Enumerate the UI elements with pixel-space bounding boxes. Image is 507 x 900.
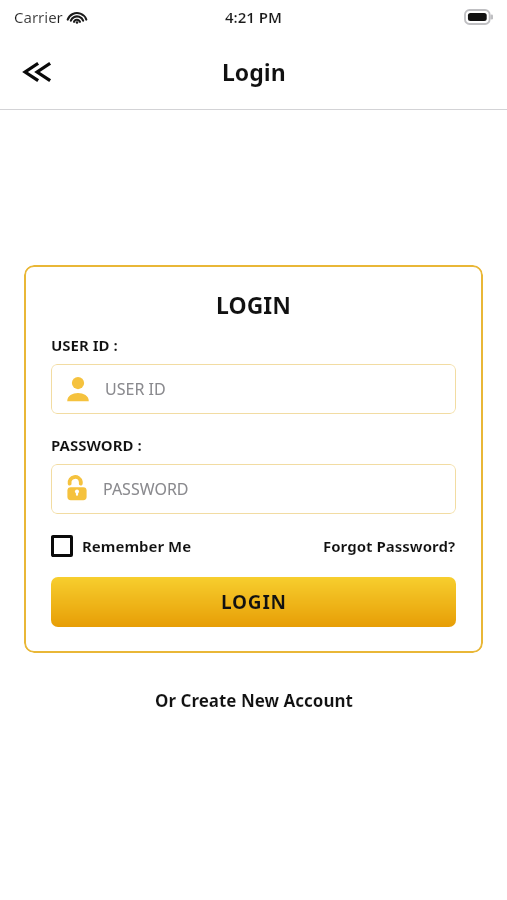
staticText: Carrier (14, 7, 63, 27)
staticText: Login (222, 56, 286, 87)
button[interactable]: Forgot Password? (323, 536, 456, 556)
staticText: USER ID : (51, 335, 118, 355)
staticText: LOGIN (51, 289, 456, 320)
staticText: PASSWORD (103, 478, 189, 500)
button[interactable]: USER ID (51, 364, 456, 414)
button[interactable]: Remember Me (51, 535, 192, 557)
staticText: LOGIN (221, 589, 287, 615)
button[interactable]: Or Create New Account (0, 689, 507, 712)
staticText: Or Create New Account (155, 689, 353, 712)
staticText: Remember Me (82, 536, 192, 556)
staticText: 4:21 PM (225, 7, 282, 27)
staticText: PASSWORD : (51, 435, 142, 455)
staticText: USER ID (105, 378, 166, 400)
staticText: Forgot Password? (323, 536, 456, 556)
button[interactable]: LOGIN (51, 577, 456, 627)
button[interactable]: PASSWORD (51, 464, 456, 514)
button[interactable]: Back (10, 47, 60, 97)
